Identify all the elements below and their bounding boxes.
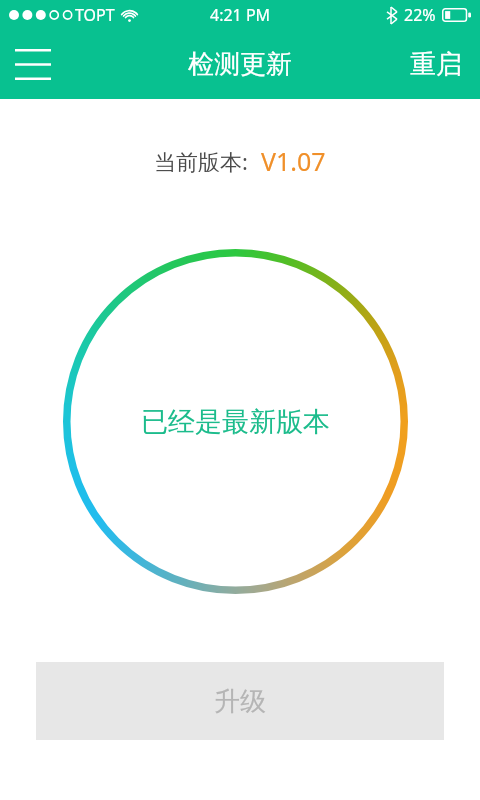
staticText: 检测更新 [188,48,292,81]
staticText: 4:21 PM [210,4,271,26]
staticText: TOPT [75,4,115,26]
staticText: 升级 [214,685,266,718]
staticText: 已经是最新版本 [141,405,330,439]
staticText: V1.07 [261,144,326,178]
button[interactable]: Menu [0,30,66,99]
button[interactable]: 重启 [392,30,480,99]
staticText: 重启 [410,48,462,81]
staticText: 当前版本: [154,146,248,176]
staticText: 22% [404,4,436,26]
button[interactable]: 升级 [36,662,444,740]
